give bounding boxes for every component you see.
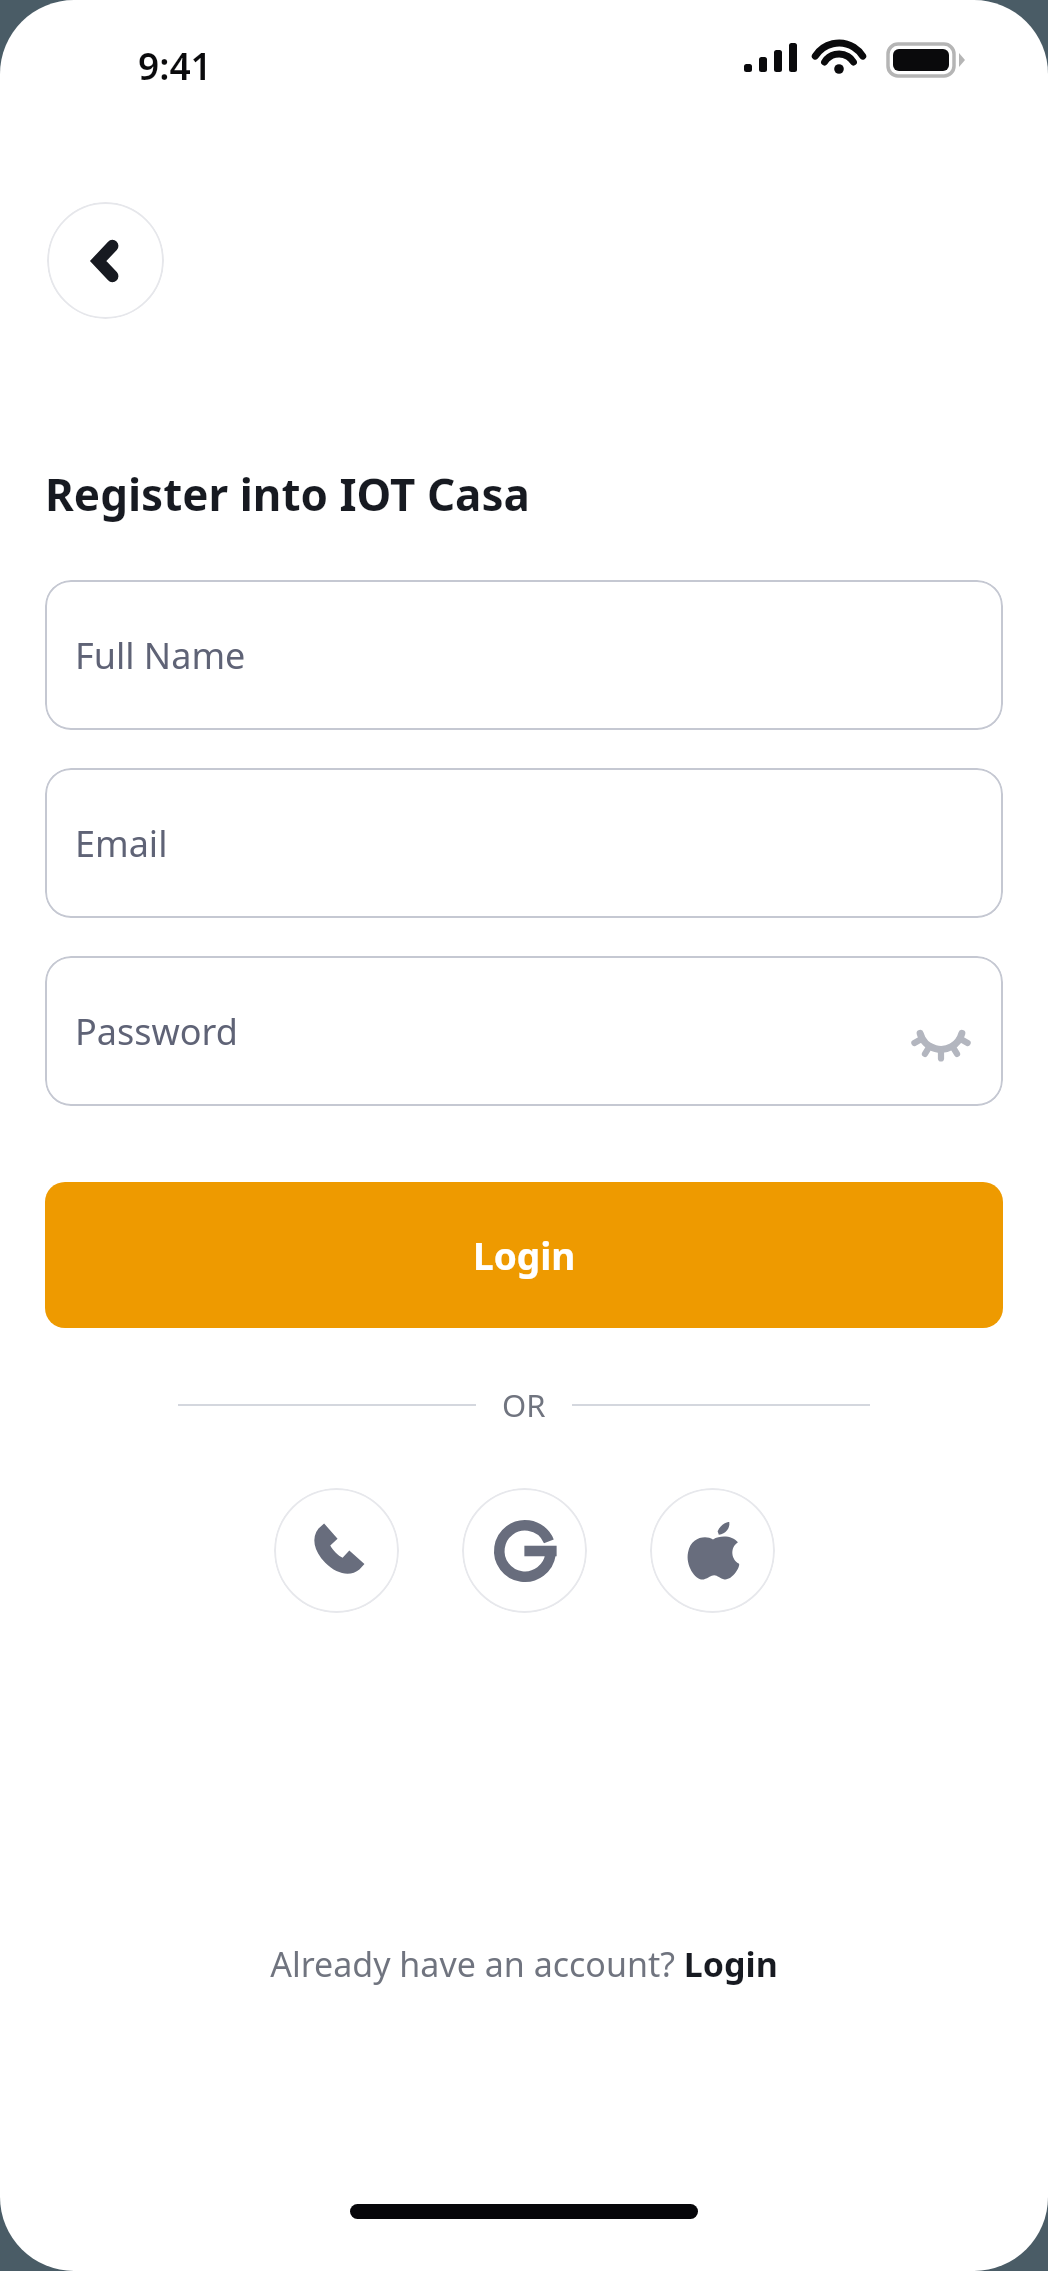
- button[interactable]: Already have an account? Login: [258, 1933, 790, 1995]
- button[interactable]: Sign in with phone: [274, 1488, 399, 1613]
- button[interactable]: Show password: [903, 993, 979, 1069]
- staticText: Login: [473, 1230, 576, 1280]
- button[interactable]: Sign in with Google: [462, 1488, 587, 1613]
- staticText: Full Name: [75, 631, 246, 680]
- button[interactable]: Full Name: [45, 580, 1003, 730]
- staticText: Email: [75, 819, 168, 868]
- button[interactable]: Login: [45, 1182, 1003, 1328]
- staticText: Password: [75, 1007, 238, 1056]
- button[interactable]: Back: [47, 202, 164, 319]
- staticText: Already have an account? Login: [270, 1941, 778, 1987]
- button[interactable]: Sign in with Apple: [650, 1488, 775, 1613]
- staticText: OR: [502, 1384, 546, 1426]
- staticText: Register into IOT Casa: [45, 464, 530, 524]
- button[interactable]: Password: [45, 956, 1003, 1106]
- button[interactable]: Email: [45, 768, 1003, 918]
- staticText: 9:41: [138, 40, 212, 90]
